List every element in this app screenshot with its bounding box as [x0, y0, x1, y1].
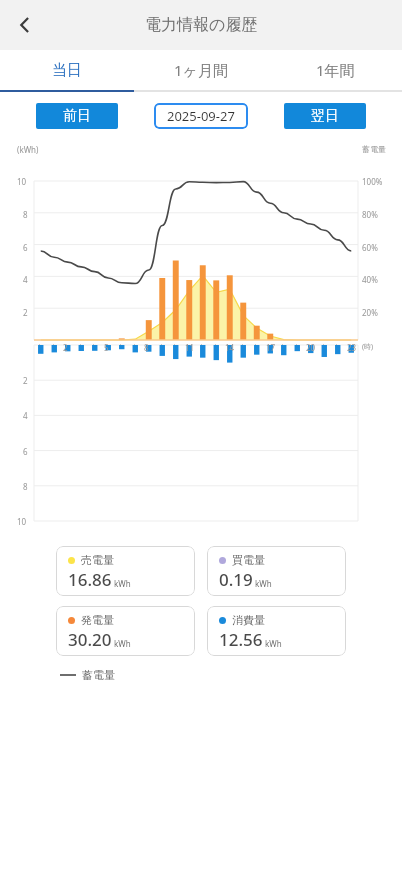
- staticText: 電力情報の履歴: [145, 15, 258, 35]
- staticText: 5: [104, 342, 109, 353]
- staticText: 2: [63, 342, 68, 353]
- button[interactable]: 1ヶ月間: [134, 50, 268, 90]
- staticText: 60%: [362, 242, 378, 253]
- button[interactable]: 当日: [0, 50, 134, 90]
- staticText: ・: [78, 341, 83, 347]
- staticText: 発電量: [81, 613, 114, 627]
- staticText: (時): [362, 342, 374, 352]
- staticText: ・: [253, 341, 258, 347]
- staticText: ・: [294, 341, 299, 347]
- staticText: 16.86: [68, 568, 112, 591]
- staticText: 20: [306, 342, 316, 353]
- staticText: 10: [17, 176, 27, 187]
- staticText: 100%: [362, 176, 383, 187]
- staticText: kWh: [255, 578, 272, 589]
- staticText: 80%: [362, 209, 378, 220]
- staticText: 11: [185, 342, 195, 353]
- button[interactable]: 翌日: [284, 103, 366, 129]
- button[interactable]: 売電量: [56, 546, 195, 596]
- staticText: 0.19: [219, 568, 253, 591]
- staticText: 23: [347, 342, 357, 353]
- staticText: 6: [23, 242, 28, 253]
- button[interactable]: 買電量: [207, 546, 346, 596]
- staticText: ・: [132, 341, 137, 347]
- staticText: kWh: [265, 638, 282, 649]
- staticText: ・: [213, 341, 218, 347]
- staticText: ・: [51, 341, 56, 347]
- button[interactable]: 発電量: [56, 606, 195, 656]
- staticText: 14: [225, 342, 235, 353]
- staticText: kWh: [114, 638, 131, 649]
- staticText: 20%: [362, 307, 378, 318]
- staticText: 8: [23, 481, 28, 492]
- staticText: 買電量: [232, 553, 265, 567]
- staticText: ・: [118, 341, 123, 347]
- staticText: ・: [37, 341, 42, 347]
- button[interactable]: 2025-09-27: [154, 103, 248, 129]
- staticText: 1年間: [316, 60, 355, 80]
- staticText: 2: [23, 375, 28, 386]
- button[interactable]: 蓄電量: [60, 668, 115, 682]
- staticText: 8: [23, 209, 28, 220]
- button[interactable]: 1年間: [268, 50, 402, 90]
- staticText: 前日: [63, 107, 91, 125]
- staticText: 12.56: [219, 628, 263, 651]
- staticText: ・: [334, 341, 339, 347]
- staticText: 翌日: [311, 107, 339, 125]
- staticText: ・: [91, 341, 96, 347]
- staticText: ・: [280, 341, 285, 347]
- staticText: 40%: [362, 274, 378, 285]
- staticText: 蓄電量: [362, 144, 386, 154]
- button[interactable]: 消費量: [207, 606, 346, 656]
- staticText: 4: [23, 410, 28, 421]
- staticText: 1ヶ月間: [174, 60, 228, 80]
- staticText: 8: [144, 342, 149, 353]
- staticText: ・: [321, 341, 326, 347]
- staticText: 30.20: [68, 628, 112, 651]
- staticText: 消費量: [232, 613, 265, 627]
- staticText: ・: [199, 341, 204, 347]
- staticText: 6: [23, 446, 28, 457]
- staticText: kWh: [114, 578, 131, 589]
- staticText: 蓄電量: [82, 668, 115, 682]
- staticText: 4: [23, 274, 28, 285]
- staticText: 17: [266, 342, 276, 353]
- staticText: 売電量: [81, 553, 114, 567]
- staticText: 当日: [52, 61, 82, 80]
- staticText: ・: [159, 341, 164, 347]
- button[interactable]: Back: [0, 0, 50, 50]
- staticText: (kWh): [17, 144, 39, 155]
- staticText: 2: [23, 307, 28, 318]
- button[interactable]: 前日: [36, 103, 118, 129]
- staticText: 2025-09-27: [167, 107, 235, 125]
- staticText: 10: [17, 516, 27, 527]
- staticText: ・: [172, 341, 177, 347]
- staticText: ・: [240, 341, 245, 347]
